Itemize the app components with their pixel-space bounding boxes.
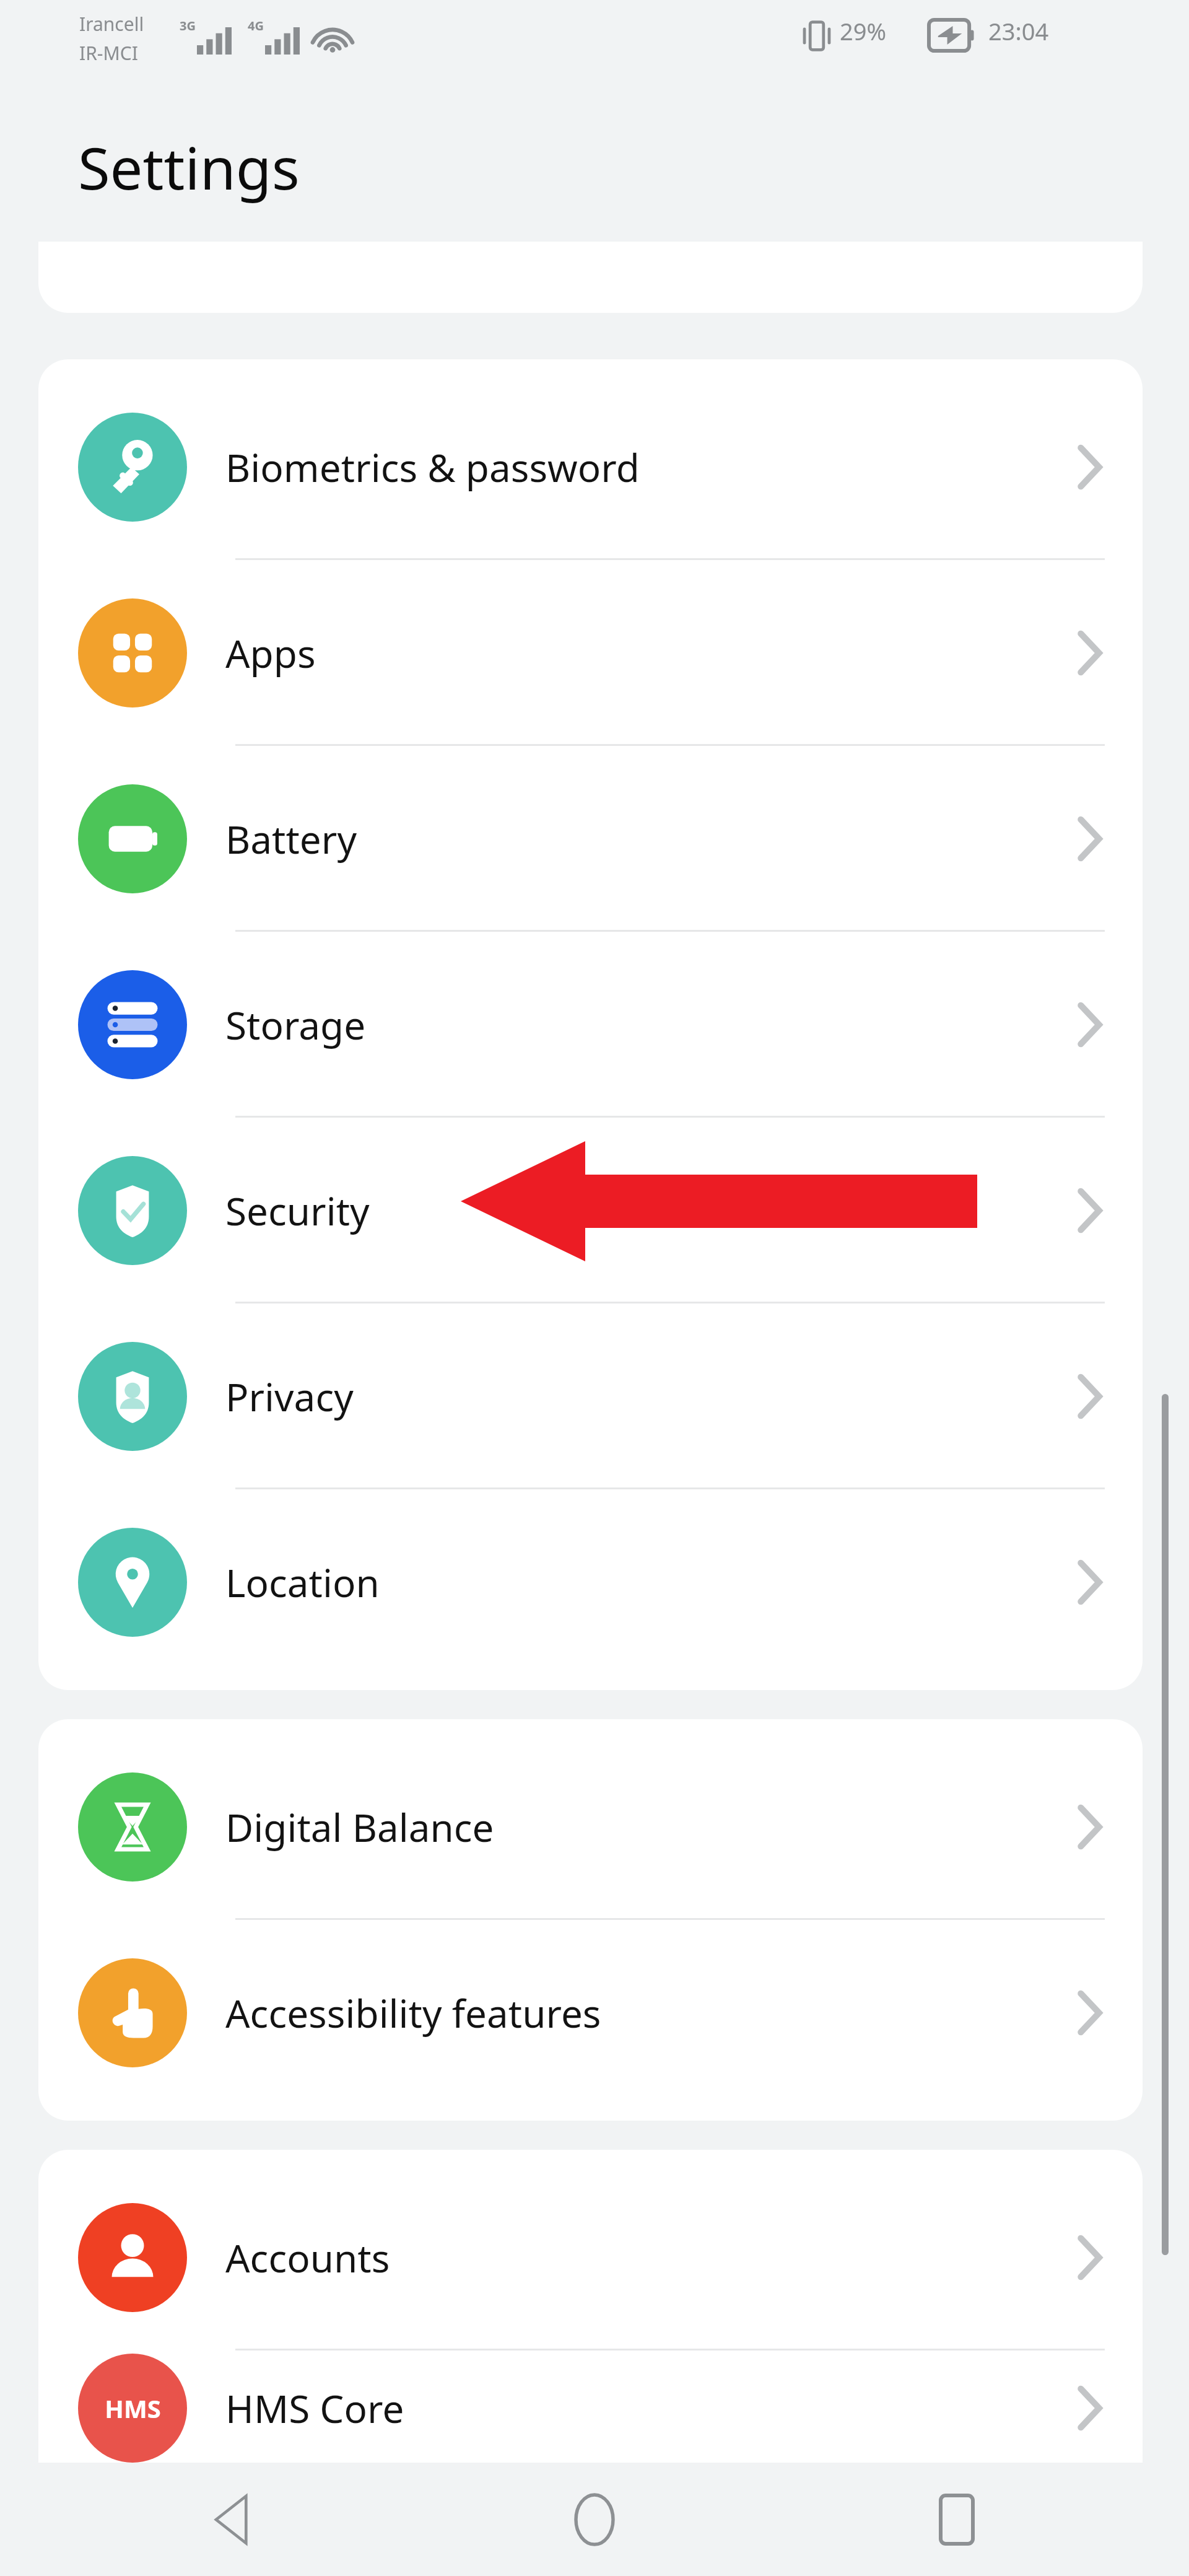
staticText: Storage — [225, 999, 366, 1051]
button[interactable]: Accounts — [38, 2165, 1143, 2350]
staticText: Biometrics & password — [225, 441, 640, 493]
button[interactable]: Security — [38, 1118, 1143, 1303]
staticText: Settings — [78, 128, 300, 207]
staticText: Privacy — [225, 1370, 354, 1422]
button[interactable]: Battery — [38, 746, 1143, 932]
button[interactable]: Privacy — [38, 1303, 1143, 1489]
button[interactable]: Biometrics & password — [38, 374, 1143, 560]
button[interactable]: Digital Balance — [38, 1734, 1143, 1920]
button[interactable]: HMS — [38, 2350, 1143, 2466]
button[interactable]: Recent apps — [910, 2473, 1003, 2566]
staticText: Irancell — [79, 11, 144, 37]
staticText: Battery — [225, 813, 357, 865]
button[interactable]: Home — [548, 2473, 641, 2566]
staticText: HMS — [105, 2391, 161, 2425]
staticText: 29% — [840, 15, 887, 47]
staticText: IR-MCI — [79, 40, 138, 66]
button[interactable]: Storage — [38, 932, 1143, 1118]
staticText: 3G — [180, 17, 196, 34]
button[interactable]: Apps — [38, 560, 1143, 746]
staticText: Apps — [225, 627, 316, 679]
staticText: HMS Core — [225, 2382, 404, 2434]
staticText: 23:04 — [988, 15, 1049, 47]
button[interactable]: Back — [186, 2473, 279, 2566]
staticText: Location — [225, 1556, 380, 1608]
staticText: Digital Balance — [225, 1801, 494, 1853]
staticText: Accessibility features — [225, 1987, 601, 2039]
staticText: Security — [225, 1185, 370, 1237]
staticText: Accounts — [225, 2232, 390, 2284]
staticText: 4G — [248, 17, 264, 34]
button[interactable]: Location — [38, 1489, 1143, 1675]
button[interactable]: Accessibility features — [38, 1920, 1143, 2106]
